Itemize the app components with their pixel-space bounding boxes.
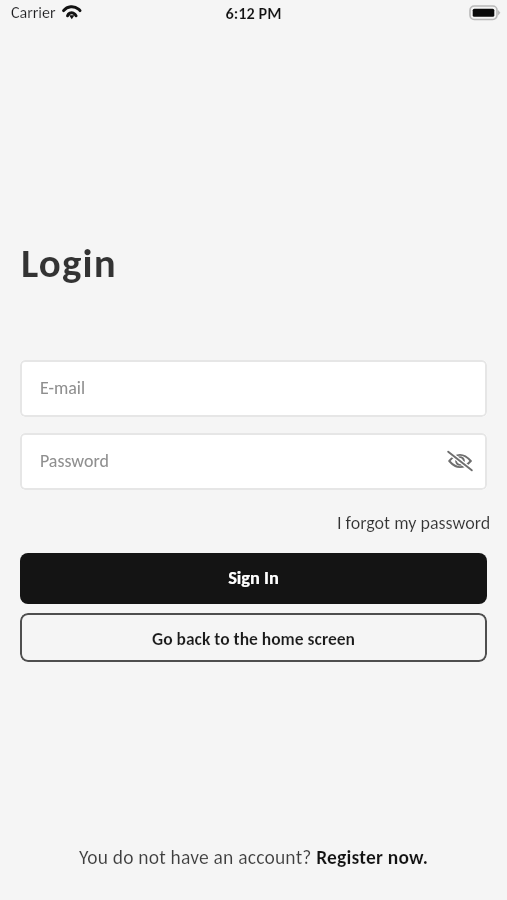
other: Wi-Fi [58,0,86,24]
button[interactable]: Show password [442,443,478,479]
button[interactable]: Go back to the home screen [20,613,487,662]
staticText: I forgot my password [337,512,491,534]
staticText: Login [21,238,117,288]
staticText: Go back to the home screen [20,628,487,649]
button[interactable]: E-mail [20,360,487,417]
staticText: Sign In [20,566,487,588]
staticText: Password [40,450,109,472]
button[interactable]: Password [20,433,487,490]
button[interactable]: Sign In [20,553,487,604]
staticText: E-mail [40,377,86,399]
staticText: You do not have an account? Register now… [79,845,429,869]
other: Battery full [466,2,504,24]
staticText: Carrier [11,3,56,23]
button[interactable]: You do not have an account? Register now… [79,841,429,869]
button[interactable]: I forgot my password [337,508,491,534]
staticText: 6:12 PM [0,3,507,23]
